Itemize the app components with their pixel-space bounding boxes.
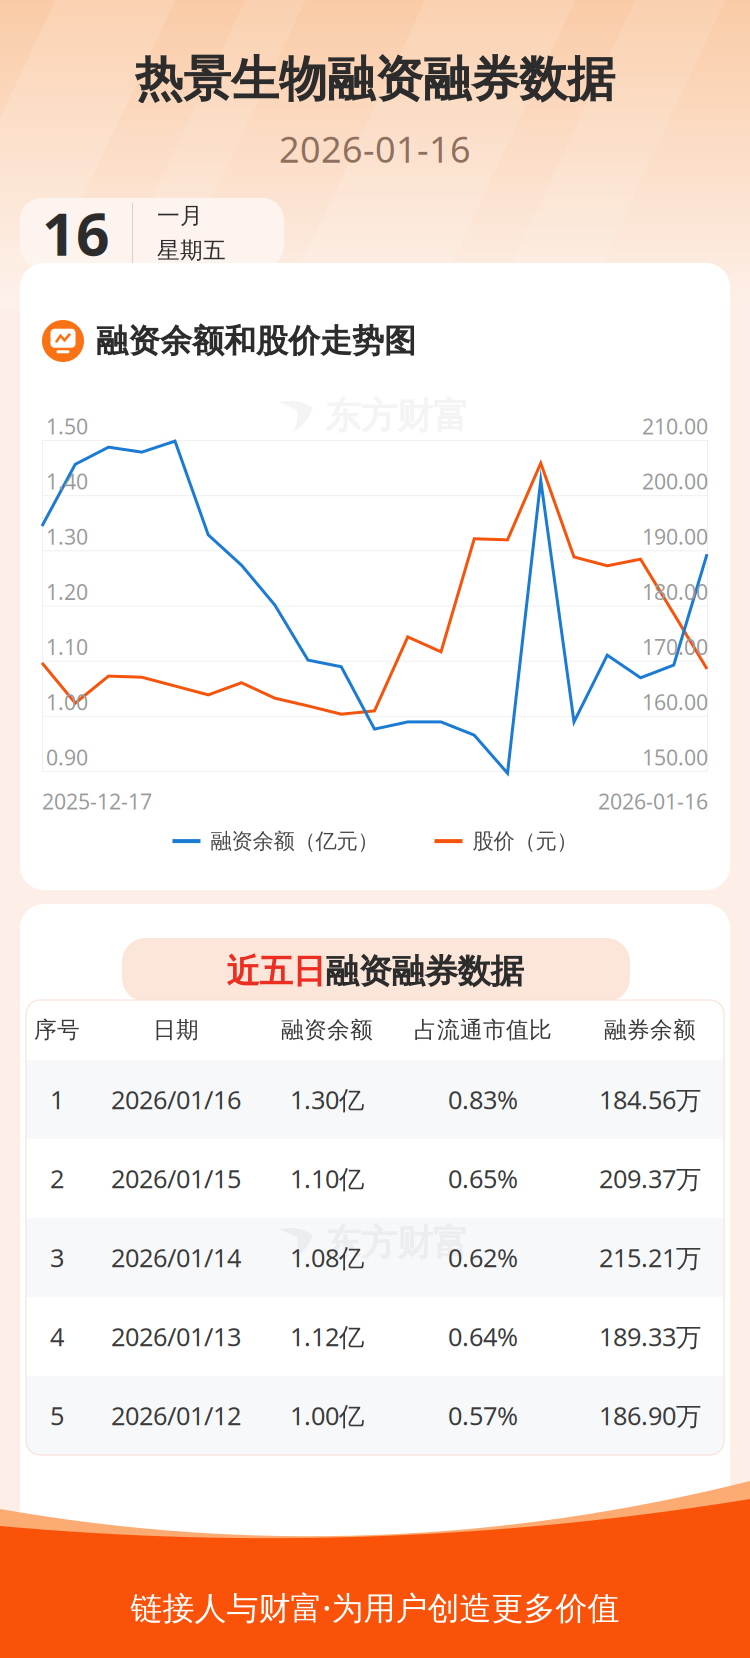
staticText: 融资融券数据 [325,951,523,992]
staticText: 0.62% [448,1241,518,1274]
staticText: 1.30 [46,522,88,551]
staticText: 0.90 [46,743,88,771]
staticText: 日期 [153,1016,199,1044]
staticText: 近五日 [226,951,325,992]
staticText: 4 [50,1320,64,1353]
staticText: 0.57% [448,1399,518,1432]
staticText: 1.08亿 [290,1241,364,1274]
staticText: 1.10 [46,633,88,661]
staticText: 一月 [157,202,203,229]
staticText: 2026-01-16 [279,125,471,173]
staticText: 189.33万 [599,1320,701,1353]
staticText: 1.40 [46,467,88,495]
staticText: 1.00 [46,688,88,716]
staticText: 210.00 [642,412,708,440]
staticText: 1.10亿 [290,1162,364,1195]
staticText: 0.83% [448,1083,518,1116]
staticText: 5 [50,1399,64,1432]
staticText: 180.00 [642,577,708,606]
staticText: 2026/01/13 [111,1320,241,1353]
staticText: 热景生物融资融券数据 [135,50,615,109]
staticText: 融资余额（亿元） [210,828,378,854]
staticText: 209.37万 [599,1162,701,1195]
staticText: 融资余额和股价走势图 [96,321,416,361]
staticText: 2 [50,1162,64,1195]
staticText: 2026-01-16 [598,787,708,815]
staticText: 16 [42,194,110,272]
staticText: 星期五 [157,236,226,264]
staticText: 融券余额 [604,1016,696,1044]
staticText: 186.90万 [599,1399,701,1432]
staticText: 2026/01/15 [111,1162,241,1195]
staticText: 215.21万 [599,1241,701,1274]
staticText: 股价（元） [472,828,577,854]
staticText: 1.20 [46,577,88,606]
staticText: 占流通市值比 [414,1016,552,1044]
staticText: 2026/01/14 [111,1241,241,1274]
staticText: 东方财富 [325,1221,469,1265]
staticText: 1.50 [46,412,88,440]
staticText: 0.65% [448,1162,518,1195]
staticText: 184.56万 [599,1083,701,1116]
staticText: 160.00 [642,688,708,716]
staticText: 0.64% [448,1320,518,1353]
staticText: 170.00 [642,633,708,661]
staticText: 链接人与财富·为用户创造更多价值 [130,1586,619,1628]
staticText: 1.00亿 [290,1399,364,1432]
staticText: 2026/01/12 [111,1399,241,1432]
staticText: 2026/01/16 [111,1083,241,1116]
staticText: 200.00 [642,467,708,495]
staticText: 150.00 [642,743,708,771]
staticText: 1 [50,1083,64,1116]
staticText: 2025-12-17 [42,787,152,815]
staticText: 融资余额 [281,1016,373,1044]
staticText: 1.12亿 [290,1320,364,1353]
staticText: 序号 [34,1016,80,1044]
staticText: 3 [50,1241,64,1274]
staticText: 1.30亿 [290,1083,364,1116]
staticText: 190.00 [642,522,708,551]
staticText: 东方财富 [325,394,469,438]
